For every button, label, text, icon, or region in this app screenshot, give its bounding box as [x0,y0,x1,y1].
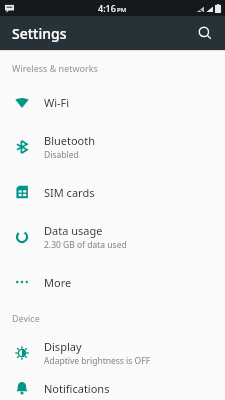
staticText: Device [12,312,40,324]
button[interactable]: SIM cards [0,170,225,214]
button[interactable]: Search [191,19,219,47]
staticText: Settings [12,24,67,43]
staticText: Wireless & networks [12,62,98,74]
button[interactable]: Bluetooth [0,124,225,170]
button[interactable]: Data usage [0,214,225,260]
staticText: PM [117,6,127,14]
button[interactable]: Wi-Fi [0,80,225,124]
staticText: Adaptive brightness is OFF [44,355,151,367]
staticText: 2.30 GB of data used [44,239,127,251]
staticText: SIM cards [44,185,95,200]
staticText: Wi-Fi [44,95,70,110]
button[interactable]: More [0,260,225,304]
staticText: Display [44,339,82,354]
staticText: Notifications [44,381,110,396]
staticText: Data usage [44,223,103,238]
staticText: Bluetooth [44,133,96,148]
button[interactable]: Display [0,330,225,376]
staticText: 4:16 [98,2,116,14]
button[interactable]: Notifications [0,376,225,400]
staticText: More [44,275,72,290]
staticText: Disabled [44,149,79,161]
